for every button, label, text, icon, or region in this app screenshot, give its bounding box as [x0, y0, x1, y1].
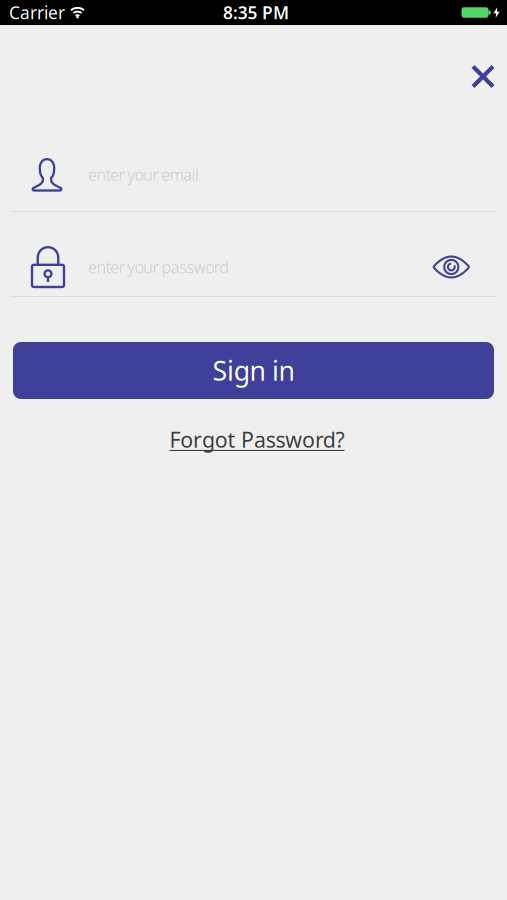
button[interactable]: Forgot Password?	[169, 425, 344, 454]
staticText: 8:35 PM	[223, 1, 289, 24]
staticText: Sign in	[212, 353, 295, 388]
button[interactable]: enter your email	[0, 141, 507, 207]
staticText: Forgot Password?	[169, 425, 344, 454]
button[interactable]: Close	[463, 56, 503, 96]
staticText: enter your email	[88, 164, 199, 185]
staticText: enter your password	[88, 256, 229, 278]
staticText: Carrier	[9, 1, 65, 24]
button[interactable]: enter your password	[0, 234, 507, 300]
button[interactable]: Sign in	[13, 342, 494, 399]
button[interactable]: Show password	[425, 249, 477, 285]
